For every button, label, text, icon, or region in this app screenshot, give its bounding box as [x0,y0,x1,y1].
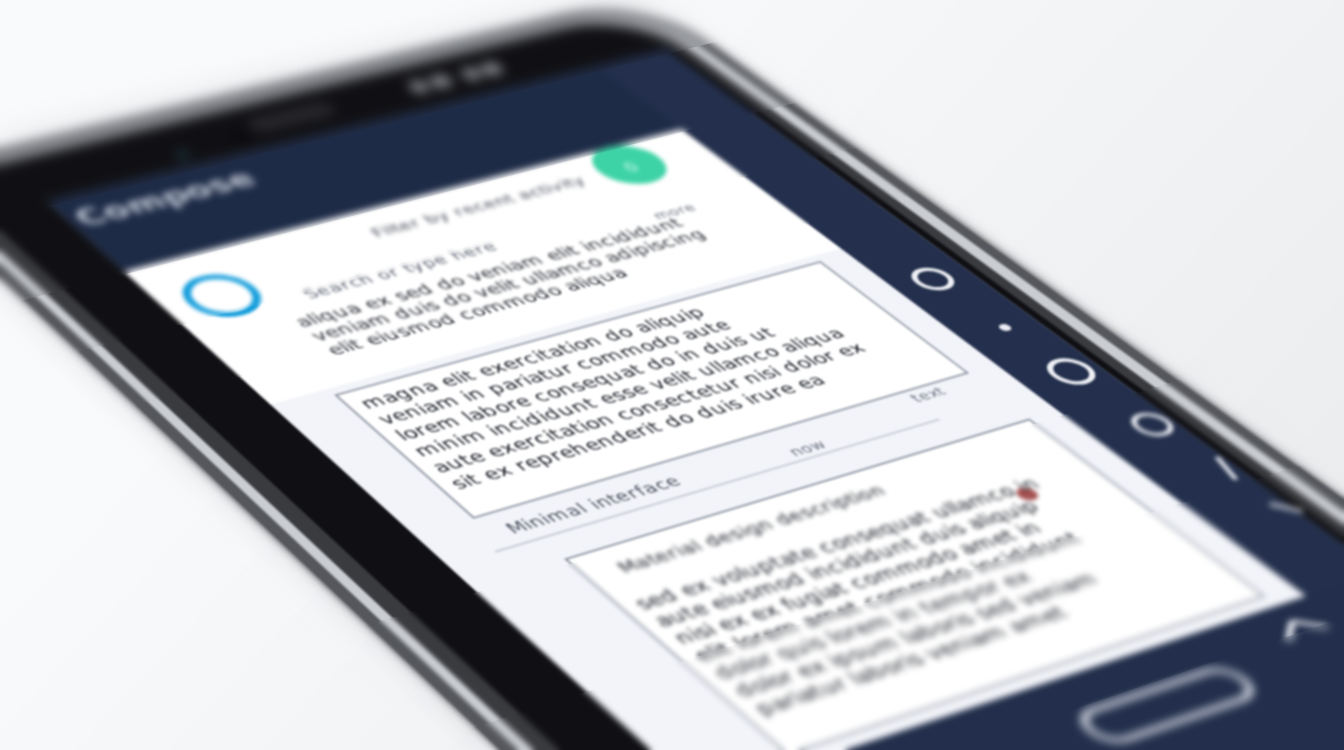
button[interactable]: Phone screen [0,0,1344,750]
